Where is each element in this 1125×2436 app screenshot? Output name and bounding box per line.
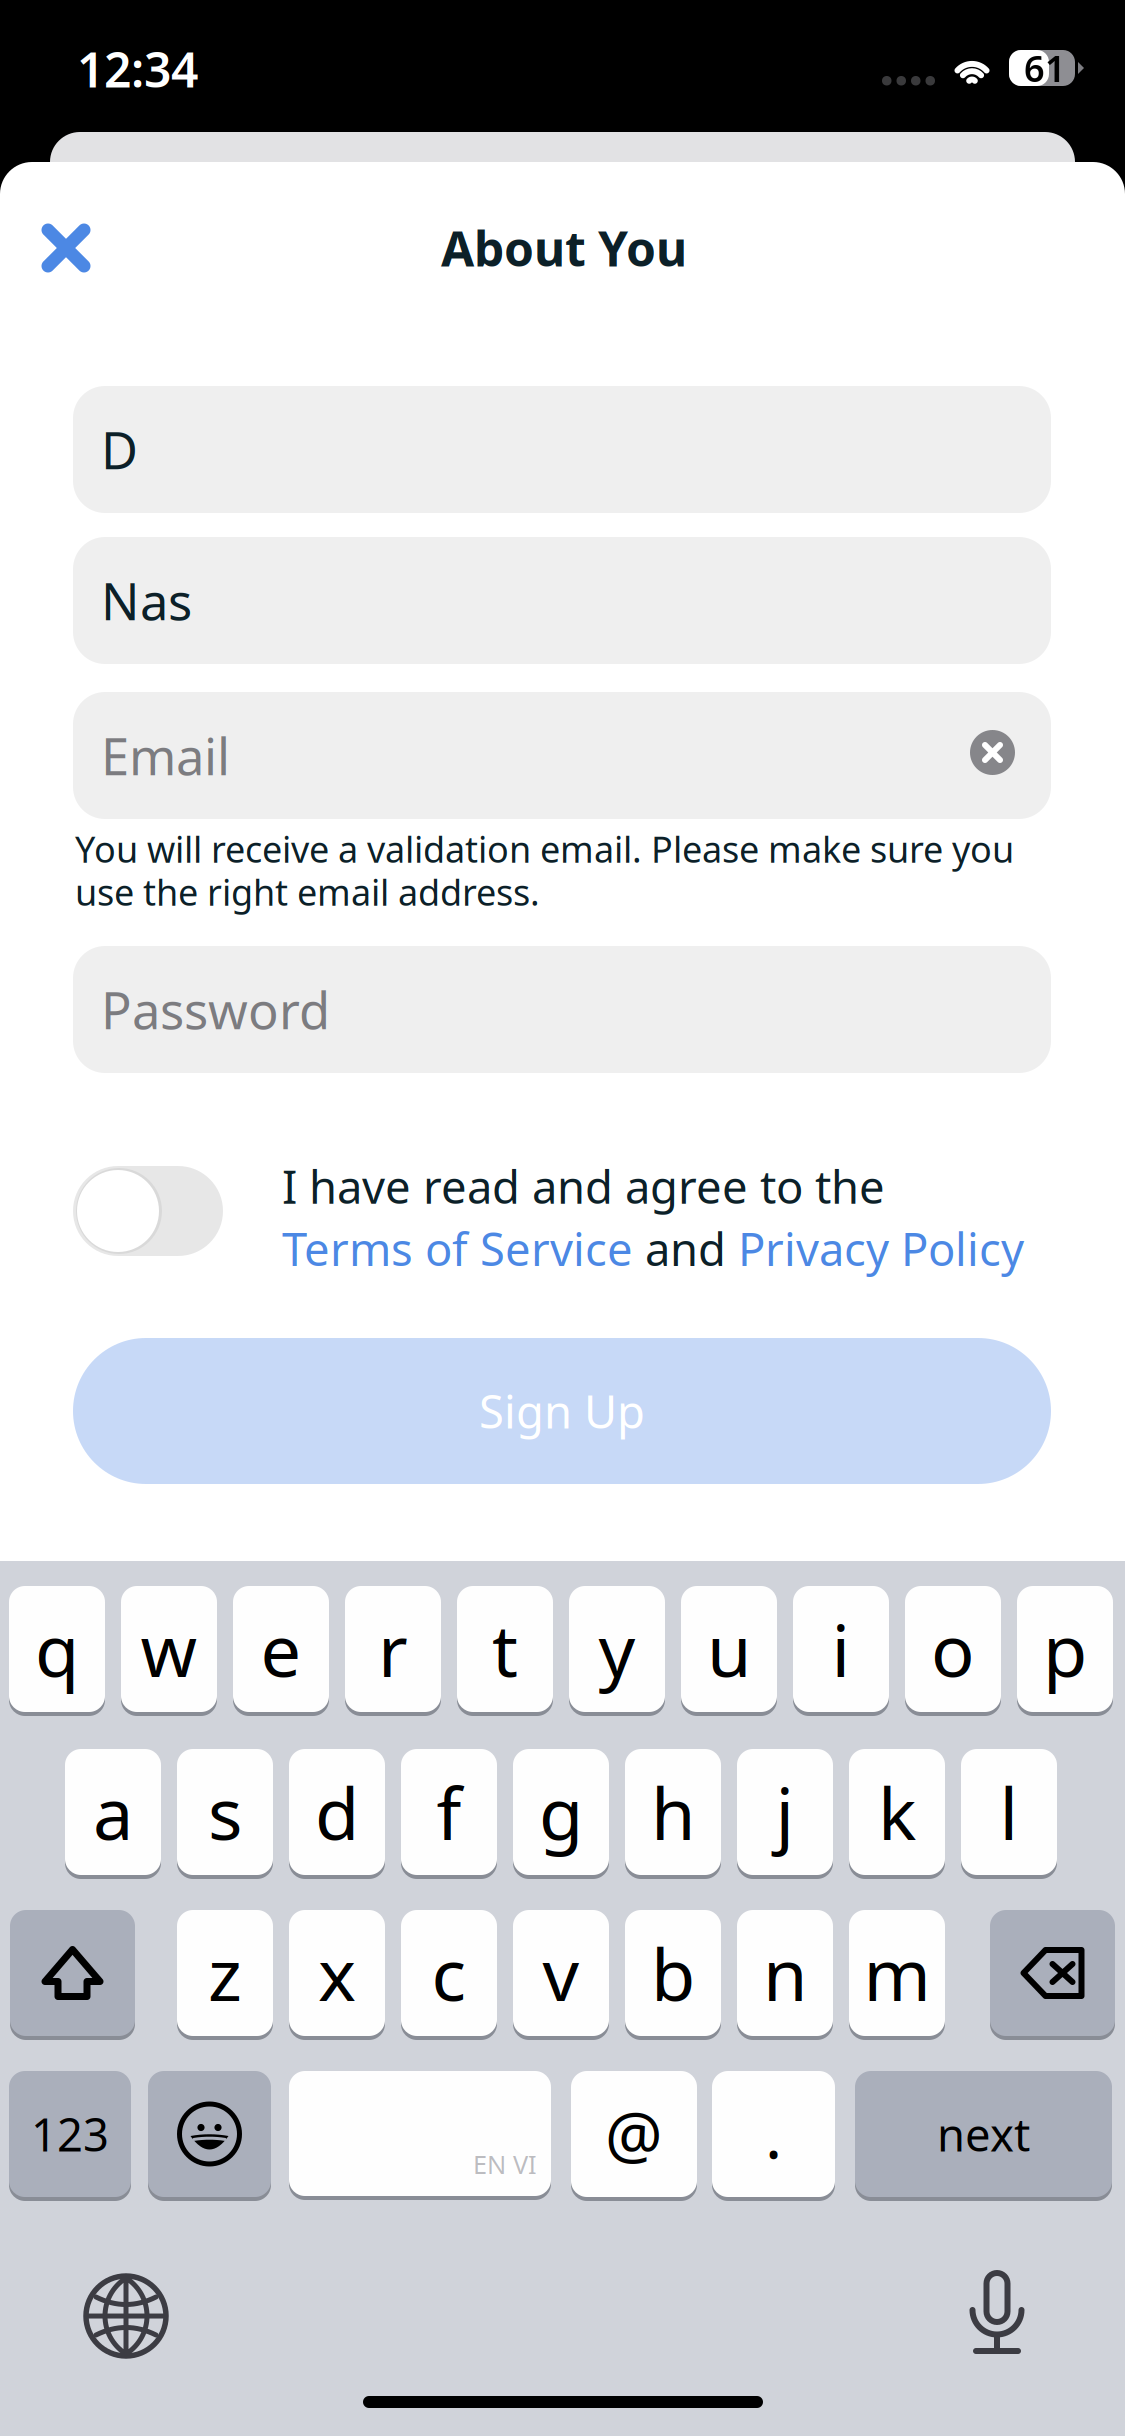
staticText: f [436,1764,461,1860]
staticText: z [208,1925,242,2021]
button[interactable]: p [1017,1586,1113,1716]
staticText: x [318,1925,356,2021]
staticText: . [765,2091,782,2176]
button[interactable]: Close [28,210,104,286]
button[interactable]: Delete [990,1910,1115,2040]
button[interactable]: c [401,1910,497,2040]
staticText: d [315,1764,359,1860]
staticText: Sign Up [479,1381,645,1441]
button[interactable]: t [457,1586,553,1716]
staticText: u [707,1601,751,1697]
button[interactable]: next [855,2071,1112,2201]
button[interactable]: f [401,1749,497,1879]
button[interactable]: m [849,1910,945,2040]
button[interactable]: @ [571,2071,697,2201]
staticText: w [140,1601,197,1697]
staticText: I have read and agree to the [282,1156,885,1216]
staticText: r [378,1601,408,1697]
button[interactable]: z [177,1910,273,2040]
button[interactable]: e [233,1586,329,1716]
staticText: EN VI [473,2147,537,2181]
button[interactable]: u [681,1586,777,1716]
button[interactable]: Agree to terms and privacy policy [73,1166,223,1256]
staticText: i [831,1601,850,1697]
staticText: k [878,1764,916,1860]
staticText: j [775,1764,794,1860]
button[interactable]: 123 [9,2071,131,2201]
button[interactable]: Next keyboard [86,2276,166,2356]
button[interactable]: j [737,1749,833,1879]
staticText: t [492,1601,518,1697]
staticText: p [1043,1601,1087,1697]
button[interactable]: k [849,1749,945,1879]
button[interactable]: Terms of Service [282,1218,633,1278]
button[interactable]: x [289,1910,385,2040]
button[interactable]: Dictation [969,2270,1025,2354]
staticText: l [999,1764,1018,1860]
staticText: c [431,1925,466,2021]
staticText: use the right email address. [75,868,540,916]
button[interactable]: a [65,1749,161,1879]
button[interactable]: h [625,1749,721,1879]
button[interactable]: w [121,1586,217,1716]
staticText: Privacy Policy [738,1218,1024,1278]
button[interactable]: Space [289,2071,551,2200]
staticText: h [651,1764,695,1860]
staticText: You will receive a validation email. Ple… [75,825,1014,873]
button[interactable]: r [345,1586,441,1716]
button[interactable]: Sign Up [73,1338,1051,1484]
staticText: s [208,1764,242,1860]
staticText: and [633,1218,738,1278]
button[interactable]: s [177,1749,273,1879]
button[interactable]: . [712,2071,835,2201]
button[interactable]: Clear text [970,730,1015,775]
staticText: b [651,1925,695,2021]
staticText: o [931,1601,975,1697]
button[interactable]: l [961,1749,1057,1879]
staticText: 12:34 [77,37,198,101]
button[interactable]: Shift [10,1910,135,2040]
button[interactable]: i [793,1586,889,1716]
staticText: Email [101,722,230,789]
button[interactable]: Emoji [148,2071,271,2201]
button[interactable]: q [9,1586,105,1716]
button[interactable]: d [289,1749,385,1879]
staticText: a [93,1764,133,1860]
staticText: next [937,2104,1030,2164]
staticText: 61 [1024,44,1066,92]
staticText: About You [441,216,687,280]
button[interactable]: n [737,1910,833,2040]
staticText: q [35,1601,79,1697]
staticText: g [539,1764,583,1860]
staticText: n [763,1925,807,2021]
button[interactable]: g [513,1749,609,1879]
button[interactable]: y [569,1586,665,1716]
staticText: @ [605,2091,663,2176]
button[interactable]: Privacy Policy [738,1218,1024,1278]
staticText: m [863,1925,930,2021]
staticText: v [542,1925,579,2021]
staticText: Password [101,976,330,1043]
staticText: e [260,1601,301,1697]
staticText: Nas [101,567,192,634]
button[interactable]: o [905,1586,1001,1716]
button[interactable]: b [625,1910,721,2040]
staticText: D [101,416,138,483]
staticText: Terms of Service [282,1218,633,1278]
staticText: 123 [31,2104,109,2164]
staticText: y [598,1601,635,1697]
button[interactable]: v [513,1910,609,2040]
